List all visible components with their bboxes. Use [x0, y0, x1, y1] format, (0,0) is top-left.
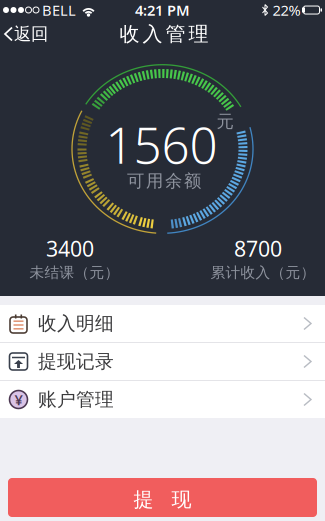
button[interactable]: 提现记录 — [0, 343, 325, 380]
staticText: BELL — [42, 0, 76, 20]
staticText: 收入管理 — [119, 22, 208, 46]
staticText: 提 现 — [133, 487, 191, 512]
button[interactable]: 收入明细 — [0, 305, 325, 342]
staticText: 收入明细 — [38, 312, 114, 335]
staticText: 未结课（元） — [29, 264, 119, 282]
staticText: 4:21 PM — [135, 0, 190, 20]
staticText: 账户管理 — [38, 388, 114, 411]
button[interactable]: ¥ — [0, 381, 325, 418]
staticText: 可用余额 — [127, 170, 201, 192]
staticText: 元 — [216, 111, 233, 132]
staticText: 累计收入（元） — [210, 264, 315, 282]
staticText: 22% — [272, 0, 300, 20]
staticText: 3400 — [46, 234, 94, 263]
staticText: ¥ — [14, 390, 22, 409]
staticText: 提现记录 — [38, 350, 114, 373]
staticText: 1560 — [105, 112, 217, 177]
button[interactable]: 返回 — [0, 23, 48, 45]
button[interactable]: 提 现 — [8, 478, 317, 517]
staticText: 8700 — [234, 234, 282, 263]
staticText: 返回 — [14, 23, 48, 45]
